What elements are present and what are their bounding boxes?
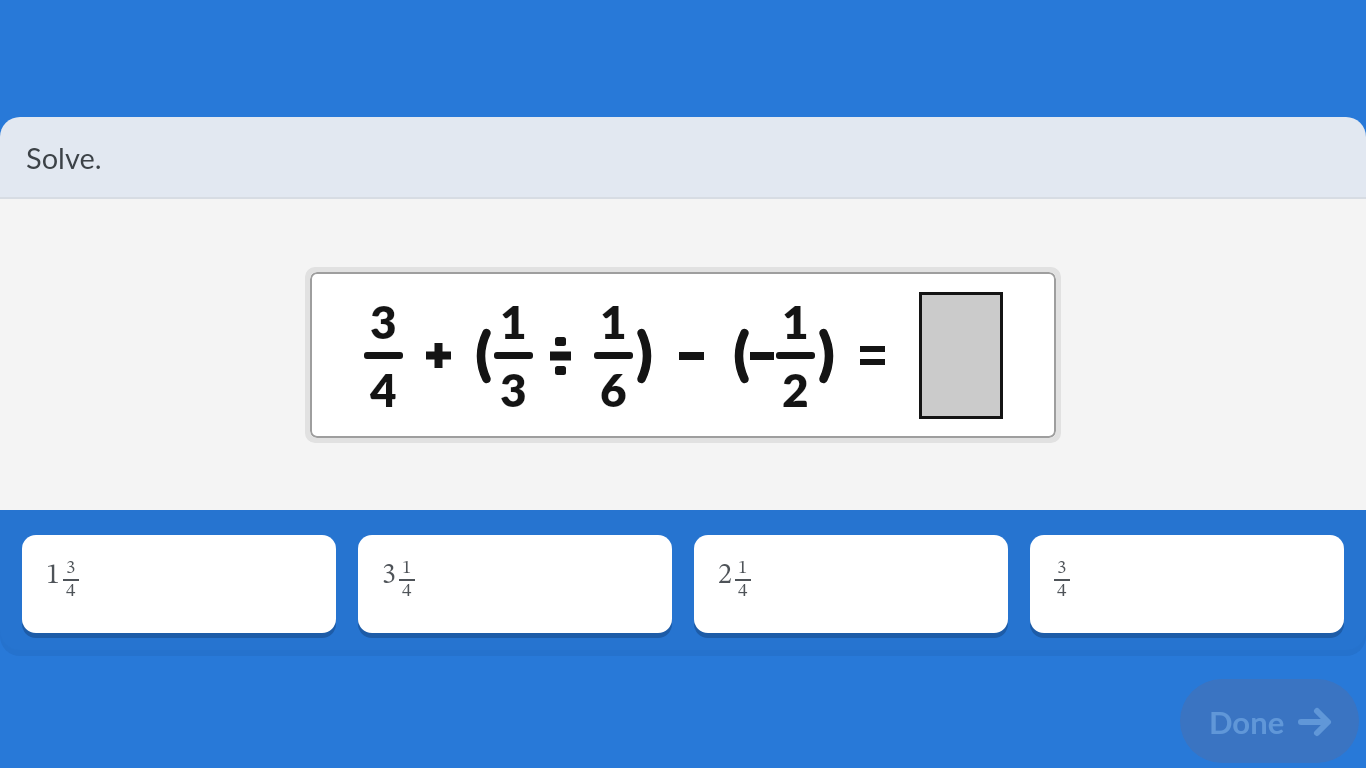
staticText: 3 [370, 294, 397, 349]
staticText: 1 [500, 294, 527, 349]
staticText: 4 [370, 362, 397, 417]
staticText: 2 [782, 362, 809, 417]
staticText: 4 [1057, 582, 1067, 601]
staticText: 1 [782, 294, 809, 349]
staticText: 4 [402, 582, 412, 601]
staticText: Solve. [26, 140, 102, 175]
staticText: 2 [718, 562, 732, 590]
staticText: 3 [500, 362, 527, 417]
button[interactable]: 1 [22, 535, 336, 633]
staticText: 3 [66, 559, 76, 578]
staticText: Done [1209, 703, 1285, 740]
staticText: 1 [46, 562, 60, 590]
staticText: 1 [402, 559, 412, 578]
button[interactable]: 3 [358, 535, 672, 633]
staticText: 6 [600, 362, 627, 417]
staticText: 4 [738, 582, 748, 601]
staticText: 4 [66, 582, 76, 601]
staticText: 3 [382, 562, 396, 590]
button[interactable]: 3 [1030, 535, 1344, 633]
button[interactable]: Done [1180, 679, 1359, 763]
staticText: 1 [738, 559, 748, 578]
staticText: 3 [1057, 559, 1067, 578]
button[interactable]: 2 [694, 535, 1008, 633]
staticText: 1 [600, 294, 627, 349]
